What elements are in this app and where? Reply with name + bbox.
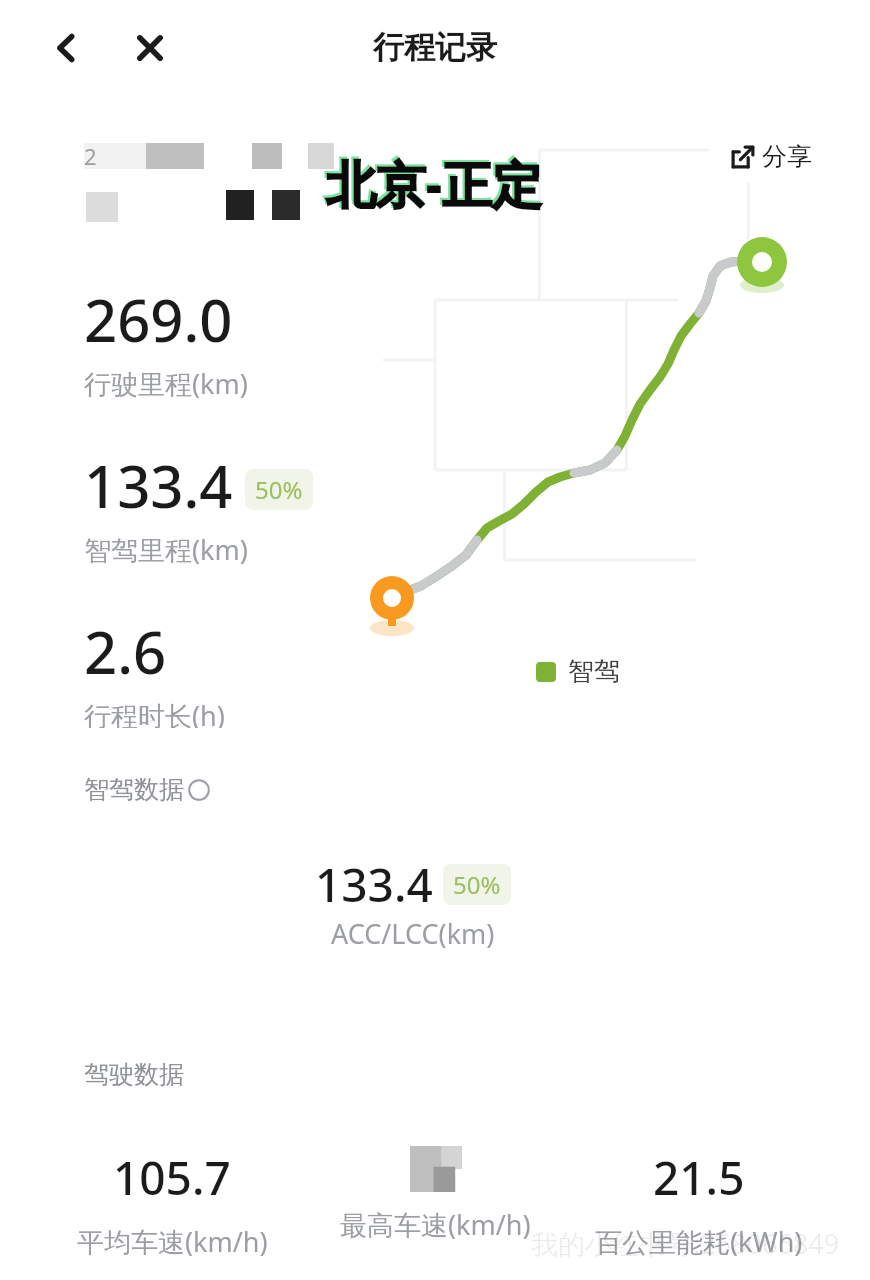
staticText: 最高车速(km/h) [340,1206,531,1243]
staticText: 2.6 [84,612,167,691]
staticText: 50% [255,473,303,506]
staticText: 百公里能耗(kWh) [595,1223,803,1260]
staticText: ACC/LCC(km) [331,915,495,952]
button[interactable]: Close [122,20,178,76]
staticText: 133.4 [315,853,433,916]
staticText: 驾驶数据 [84,1059,184,1090]
staticText: 行程时长(h) [84,697,225,734]
button[interactable]: 驾驶数据 [40,1013,830,1280]
button[interactable]: Back [38,20,94,76]
staticText: 北京-正定 [326,150,542,218]
staticText: 平均车速(km/h) [77,1223,268,1260]
staticText: 智驾里程(km) [84,531,248,568]
staticText: 2 [84,141,97,171]
staticText: 21.5 [653,1146,745,1209]
staticText: 智驾数据 [84,774,184,805]
staticText: 智驾 [568,655,620,688]
staticText: 133.4 [84,446,233,525]
staticText: 50% [453,868,501,901]
staticText: 北京-正定 [324,148,540,216]
button[interactable]: 分享 [708,130,834,183]
staticText: 分享 [762,141,812,172]
staticText: 行驶里程(km) [84,365,248,402]
staticText: 我的小红书号:268066849 [531,1225,840,1262]
staticText: 行程记录 [373,28,497,67]
staticText: 269.0 [84,280,233,359]
button[interactable]: 智驾数据 [40,728,830,983]
staticText: 105.7 [113,1146,231,1209]
